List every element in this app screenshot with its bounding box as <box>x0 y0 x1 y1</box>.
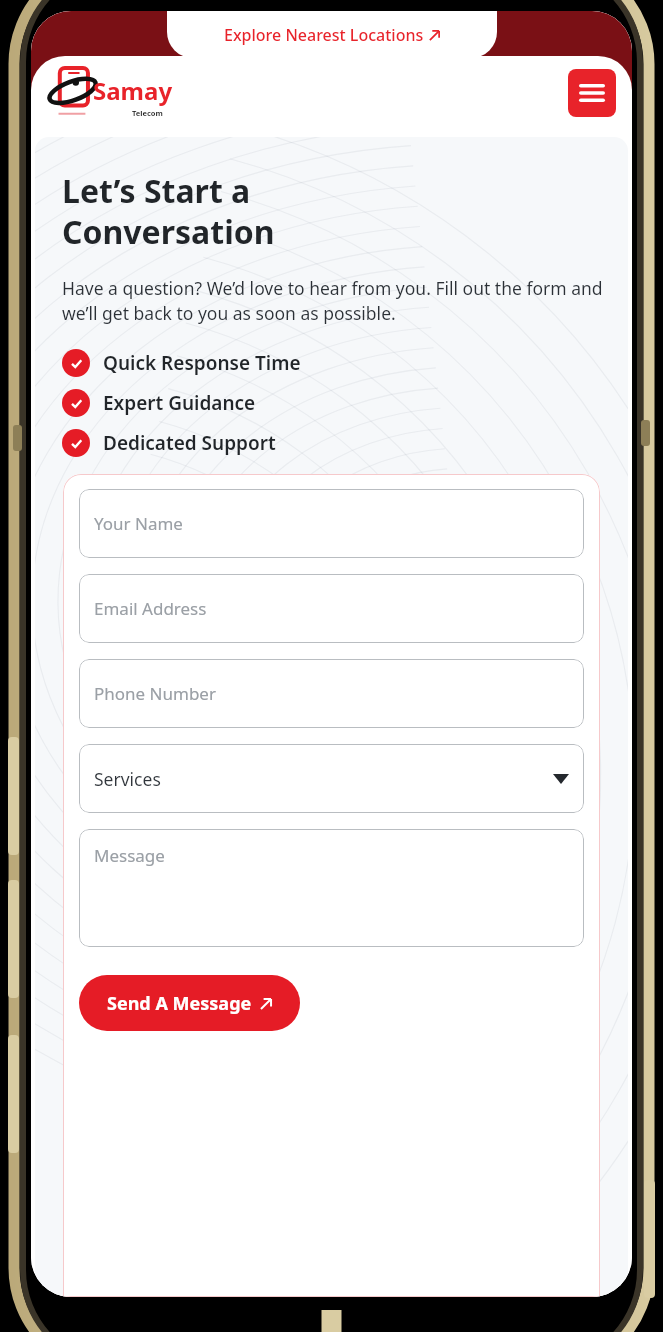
staticText: Expert Guidance <box>103 390 256 416</box>
staticText: Explore Nearest Locations <box>224 24 424 46</box>
button[interactable]: Expert Guidance <box>62 389 608 417</box>
staticText: Email Address <box>94 597 207 620</box>
staticText: Services <box>94 767 161 791</box>
staticText: Samay <box>93 74 173 107</box>
staticText: Dedicated Support <box>103 430 276 456</box>
staticText: Send A Message <box>107 991 252 1016</box>
button[interactable]: Open menu <box>568 69 616 117</box>
button[interactable]: Email Address <box>79 574 584 643</box>
staticText: Message <box>94 844 165 867</box>
button[interactable]: Services <box>79 744 584 813</box>
button[interactable]: Send A Message <box>79 975 300 1031</box>
button[interactable]: Phone Number <box>79 659 584 728</box>
staticText: Your Name <box>94 512 183 535</box>
staticText: Have a question? We’d love to hear from … <box>62 276 604 325</box>
staticText: Phone Number <box>94 682 216 705</box>
staticText: Let’s Start a Conversation <box>62 169 275 254</box>
staticText: Quick Response Time <box>103 350 301 376</box>
button[interactable]: Your Name <box>79 489 584 558</box>
button[interactable]: Dedicated Support <box>62 429 608 457</box>
button[interactable]: Message <box>79 829 584 947</box>
button[interactable]: Explore Nearest Locations <box>167 11 497 58</box>
staticText: Telecom <box>132 108 163 118</box>
button[interactable]: Quick Response Time <box>62 349 608 377</box>
